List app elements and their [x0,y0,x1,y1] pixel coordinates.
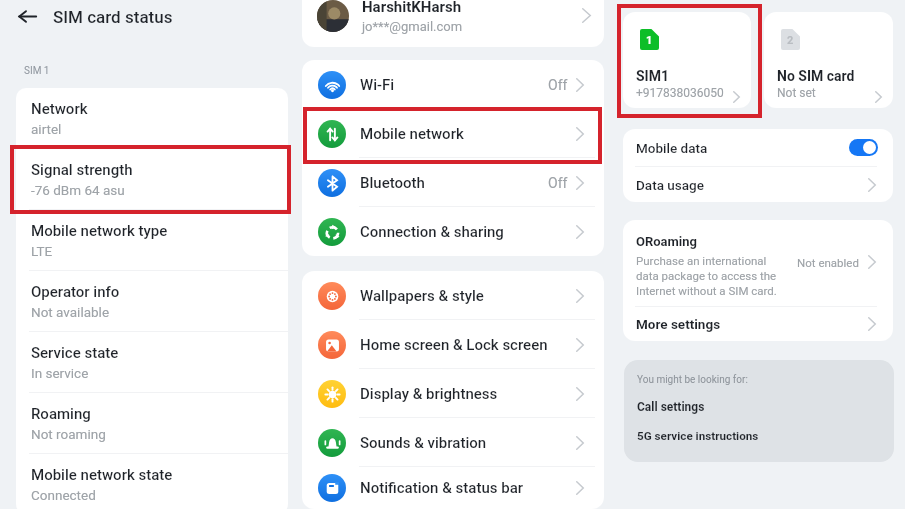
staticText: airtel [31,121,62,137]
staticText: In service [31,365,89,381]
button[interactable]: Wallpapers & style [302,271,604,320]
staticText: jo***@gmail.com [362,19,463,34]
staticText: LTE [31,243,53,259]
button[interactable]: Connection & sharing [302,207,604,256]
staticText: 2 [787,34,794,47]
staticText: 1 [646,34,653,47]
staticText: Mobile network state [31,466,173,484]
staticText: SIM card status [53,7,173,27]
button[interactable]: Signal strength [16,149,288,209]
staticText: +917838036050 [636,86,724,100]
button[interactable]: Data usage [623,167,893,202]
button[interactable]: Notification & status bar [302,467,604,509]
button[interactable]: Mobile network state [16,454,288,509]
button[interactable]: 2 [764,12,893,108]
button[interactable]: 1 [623,12,751,108]
staticText: Not set [777,86,816,100]
staticText: Mobile network type [31,222,168,240]
staticText: Bluetooth [360,174,548,192]
staticText: Roaming [31,405,91,423]
staticText: More settings [636,316,868,332]
button[interactable]: Roaming [16,393,288,453]
staticText: Purchase an international data package t… [636,254,782,298]
button[interactable]: Back [13,2,41,30]
button[interactable]: Mobile network type [16,210,288,270]
staticText: Data usage [636,177,868,193]
staticText: Wallpapers & style [360,287,576,305]
button[interactable]: HarshitKHarsh [302,0,604,47]
staticText: Operator info [31,283,120,301]
staticText: No SIM card [777,68,855,84]
button[interactable]: Mobile data toggle [849,139,878,156]
button[interactable]: Call settings [624,400,894,414]
staticText: HarshitKHarsh [362,0,462,16]
staticText: Not enabled [797,256,859,269]
staticText: Off [548,175,568,191]
staticText: -76 dBm 64 asu [31,182,125,198]
staticText: Mobile data [636,140,849,156]
button[interactable]: Mobile network [302,109,604,158]
staticText: Not roaming [31,426,106,442]
staticText: Signal strength [31,161,133,179]
button[interactable]: More settings [623,307,893,341]
button[interactable]: Mobile data [623,129,893,166]
staticText: Wi-Fi [360,76,548,94]
button[interactable]: Home screen & Lock screen [302,320,604,369]
staticText: SIM1 [636,68,669,84]
staticText: Not available [31,304,110,320]
button[interactable]: Service state [16,332,288,392]
staticText: Mobile network [360,125,576,143]
staticText: Notification & status bar [360,479,576,497]
staticText: Home screen & Lock screen [360,336,576,354]
button[interactable]: Display & brightness [302,369,604,418]
staticText: Network [31,100,88,118]
button[interactable]: Bluetooth [302,158,604,207]
button[interactable]: Sounds & vibration [302,418,604,467]
button[interactable]: Wi-Fi [302,60,604,109]
staticText: Connected [31,487,96,503]
button[interactable]: 5G service instructions [624,429,894,443]
button[interactable]: Network [16,88,288,148]
staticText: SIM 1 [24,65,50,77]
staticText: You might be looking for: [637,374,748,386]
staticText: Display & brightness [360,385,576,403]
staticText: ORoaming [636,234,698,249]
staticText: Off [548,77,568,93]
button[interactable]: Operator info [16,271,288,331]
staticText: Service state [31,344,119,362]
staticText: Connection & sharing [360,223,576,241]
staticText: Sounds & vibration [360,434,576,452]
